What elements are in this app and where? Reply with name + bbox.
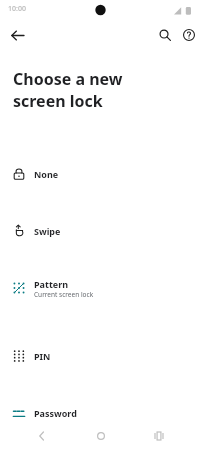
button[interactable]: Help [176,22,201,48]
staticText: Choose a new [13,68,123,90]
staticText: Pattern [34,278,69,290]
staticText: 10:00 [8,4,26,14]
button[interactable]: Back [30,424,54,448]
staticText: PIN [34,350,51,362]
staticText: None [34,168,59,180]
staticText: Password [34,407,77,419]
button[interactable]: Home [89,424,113,448]
button[interactable]: Recents [147,424,171,448]
staticText: screen lock [13,90,103,112]
staticText: Current screen lock [34,290,94,299]
button[interactable]: None [0,160,201,188]
button[interactable]: Swipe [0,217,201,245]
button[interactable]: Password [0,399,201,427]
button[interactable]: Search [152,22,178,48]
button[interactable]: Pattern [0,273,201,303]
button[interactable]: Back [4,22,30,48]
button[interactable]: PIN [0,342,201,370]
staticText: Swipe [34,225,61,237]
